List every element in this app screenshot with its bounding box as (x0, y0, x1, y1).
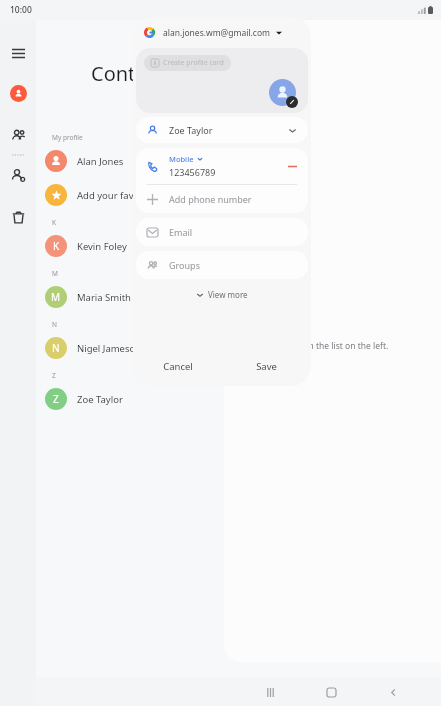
button[interactable]: Alan Jones (36, 144, 441, 178)
button[interactable]: M (36, 280, 441, 314)
staticText: M (52, 269, 58, 278)
staticText: Zoe Taylor (77, 393, 123, 406)
button[interactable]: Create profile card (144, 55, 231, 71)
button[interactable]: Groups (3, 120, 33, 150)
staticText: Groups (169, 259, 200, 271)
button[interactable]: N (36, 331, 441, 365)
staticText: Z (53, 392, 59, 406)
staticText: Select a contact from the list on the le… (230, 340, 389, 352)
staticText: Zoe Taylor (169, 124, 213, 136)
staticText: 123456789 (169, 166, 216, 178)
staticText: N (52, 320, 57, 329)
staticText: Cancel (163, 360, 193, 373)
staticText: Add phone number (169, 193, 252, 205)
button[interactable]: Add phone number (136, 185, 308, 213)
button[interactable]: Email (136, 218, 308, 246)
staticText: M (51, 290, 61, 304)
button[interactable]: Edit photo (269, 79, 298, 108)
button[interactable]: Cancel (133, 346, 222, 386)
staticText: Mobile (169, 154, 194, 164)
button[interactable]: Home (318, 679, 344, 705)
staticText: Save (256, 360, 277, 373)
button[interactable]: Back (380, 679, 406, 705)
button[interactable]: Recents (257, 679, 283, 705)
button[interactable]: Manage contacts (3, 160, 33, 190)
button[interactable]: Save (222, 346, 311, 386)
staticText: Create profile card (163, 58, 224, 68)
staticText: My profile (52, 133, 83, 142)
button[interactable]: Contacts (3, 78, 33, 108)
staticText: K (52, 218, 57, 227)
button[interactable]: Zoe Taylor (136, 117, 308, 143)
button[interactable]: Mobile (136, 148, 308, 184)
button[interactable]: Z (36, 382, 441, 416)
button[interactable]: alan.jones.wm@gmail.com (133, 17, 311, 48)
staticText: View more (208, 289, 248, 300)
staticText: Kevin Foley (77, 240, 127, 253)
staticText: N (52, 341, 60, 355)
staticText: Add your favo (77, 189, 140, 202)
staticText: Z (52, 371, 56, 380)
staticText: Maria Smith (77, 291, 131, 304)
staticText: Nigel Jameson (77, 342, 142, 355)
staticText: Contacts (91, 60, 173, 87)
staticText: Alan Jones (77, 155, 124, 168)
button[interactable]: View more (188, 286, 256, 303)
button[interactable]: Menu (3, 38, 33, 68)
button[interactable]: Add your favo (36, 178, 441, 212)
staticText: K (53, 239, 60, 253)
button[interactable]: K (36, 229, 441, 263)
button[interactable]: Groups (136, 251, 308, 279)
staticText: Email (169, 226, 193, 238)
button[interactable]: Trash (3, 202, 33, 232)
staticText: 10:00 (10, 4, 32, 16)
button[interactable]: Remove phone (288, 162, 297, 171)
staticText: alan.jones.wm@gmail.com (163, 27, 271, 39)
